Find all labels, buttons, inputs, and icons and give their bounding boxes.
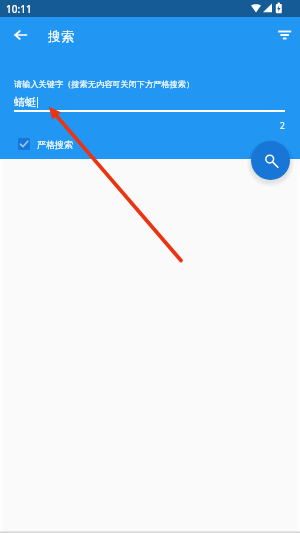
staticText: 10:11 [6, 2, 32, 16]
button[interactable]: 严格搜索 [18, 138, 73, 150]
button[interactable]: Back [4, 19, 36, 51]
staticText: 2 [280, 120, 285, 132]
button[interactable]: Search [251, 141, 290, 180]
button[interactable]: Filter [268, 19, 300, 51]
staticText: 严格搜索 [37, 139, 73, 150]
staticText: 搜索 [48, 28, 74, 44]
staticText: 蜻蜓 [14, 95, 36, 109]
staticText: 请输入关键字（搜索无内容可关闭下方严格搜索） [14, 79, 195, 89]
